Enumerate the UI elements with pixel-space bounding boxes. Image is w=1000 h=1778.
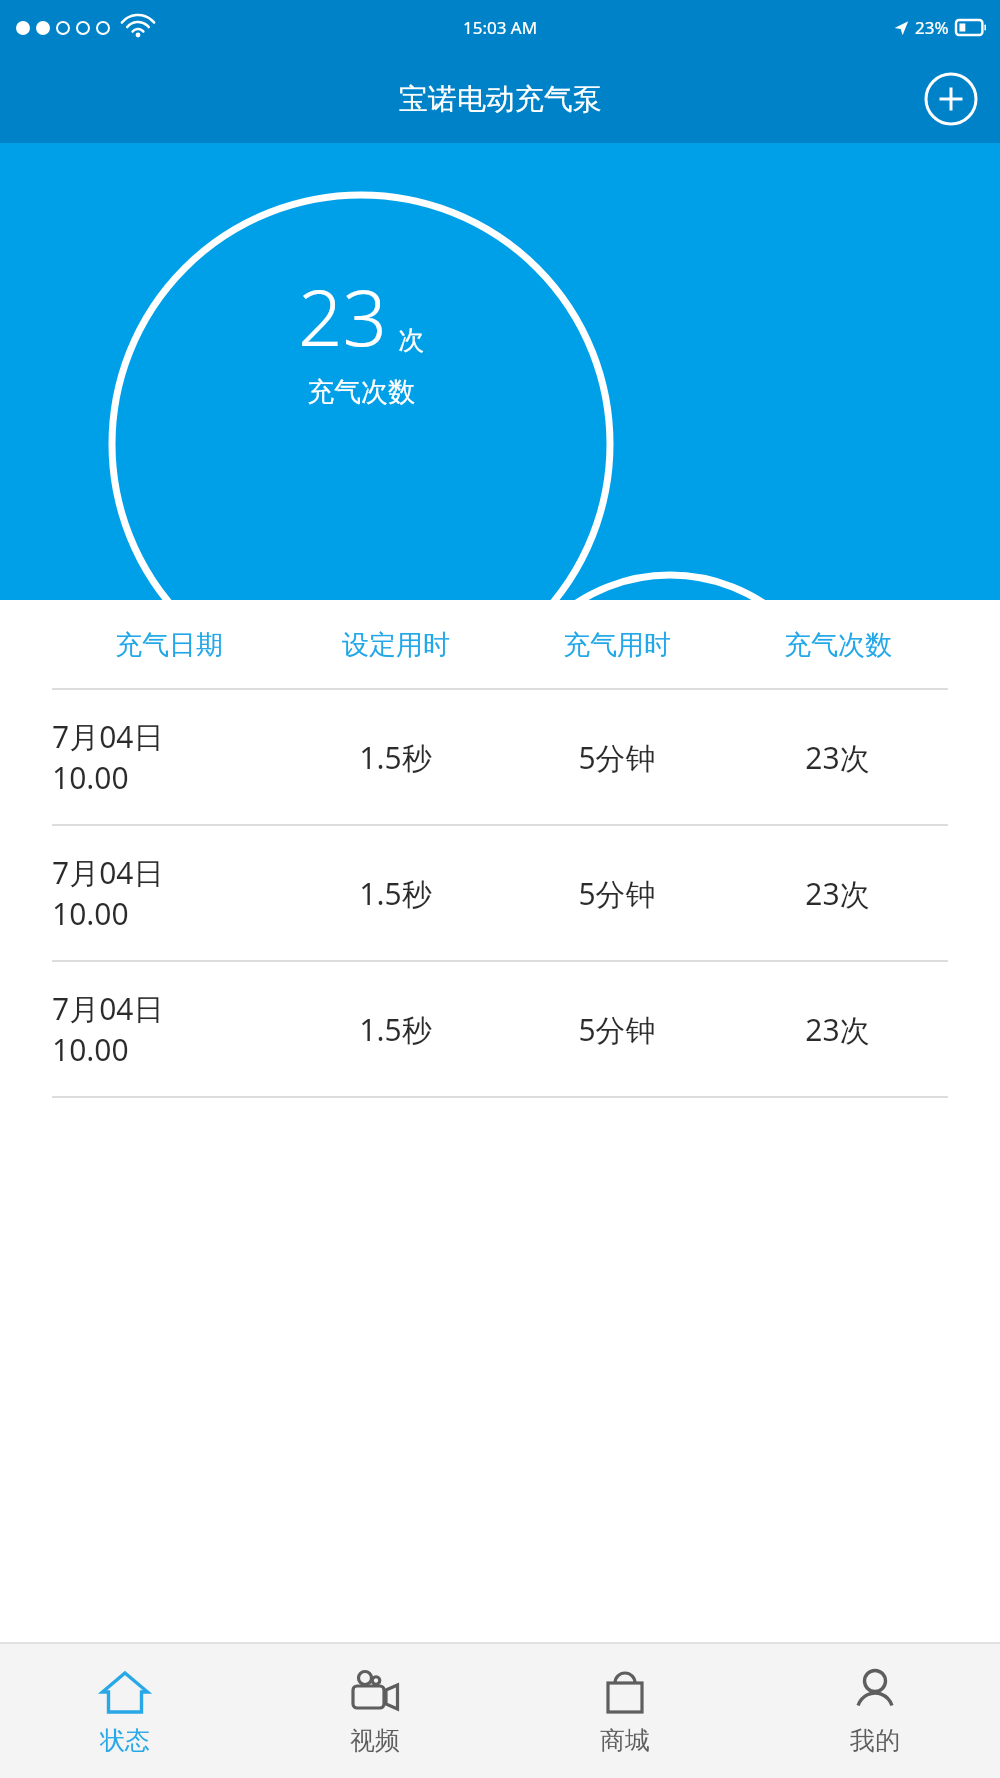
button[interactable]: 7月04日 <box>0 690 1000 824</box>
staticText: 23% <box>915 16 949 39</box>
staticText: 充气日期 <box>115 628 223 662</box>
staticText: 1.5秒 <box>359 873 432 914</box>
staticText: 10.00 <box>52 893 129 934</box>
staticText: 10.00 <box>52 757 129 798</box>
staticText: 5分钟 <box>578 1009 656 1050</box>
staticText: 设定用时 <box>342 628 450 662</box>
button[interactable]: 7月04日 <box>0 962 1000 1096</box>
staticText: 05 <box>622 591 689 670</box>
staticText: 5分钟 <box>578 873 656 914</box>
staticText: 充气用时 <box>622 674 718 704</box>
staticText: 1.5秒 <box>359 737 432 778</box>
staticText: 次 <box>398 324 424 357</box>
button[interactable]: 我的 <box>750 1644 1000 1778</box>
button[interactable]: Add <box>924 72 978 126</box>
staticText: 23次 <box>805 873 870 914</box>
button[interactable]: 7月04日 <box>0 826 1000 960</box>
staticText: 宝诺电动充气泵 <box>399 81 602 118</box>
staticText: 23次 <box>805 737 870 778</box>
staticText: 10.00 <box>52 1029 129 1070</box>
staticText: 5分钟 <box>578 737 656 778</box>
staticText: 充气次数 <box>307 375 415 409</box>
staticText: 状态 <box>100 1725 150 1756</box>
staticText: 视频 <box>350 1725 400 1756</box>
button[interactable]: 视频 <box>250 1644 500 1778</box>
staticText: 充气次数 <box>784 628 892 662</box>
staticText: 7月04日 <box>52 716 164 757</box>
staticText: 1.5秒 <box>359 1009 432 1050</box>
staticText: 7月04日 <box>52 852 164 893</box>
staticText: 我的 <box>850 1725 900 1756</box>
staticText: 商城 <box>600 1725 650 1756</box>
button[interactable]: 商城 <box>500 1644 750 1778</box>
staticText: 23次 <box>805 1009 870 1050</box>
staticText: 23 <box>298 263 388 369</box>
staticText: 7月04日 <box>52 988 164 1029</box>
staticText: 15:03 AM <box>463 16 538 39</box>
staticText: 充气用时 <box>563 628 671 662</box>
button[interactable]: 状态 <box>0 1644 250 1778</box>
